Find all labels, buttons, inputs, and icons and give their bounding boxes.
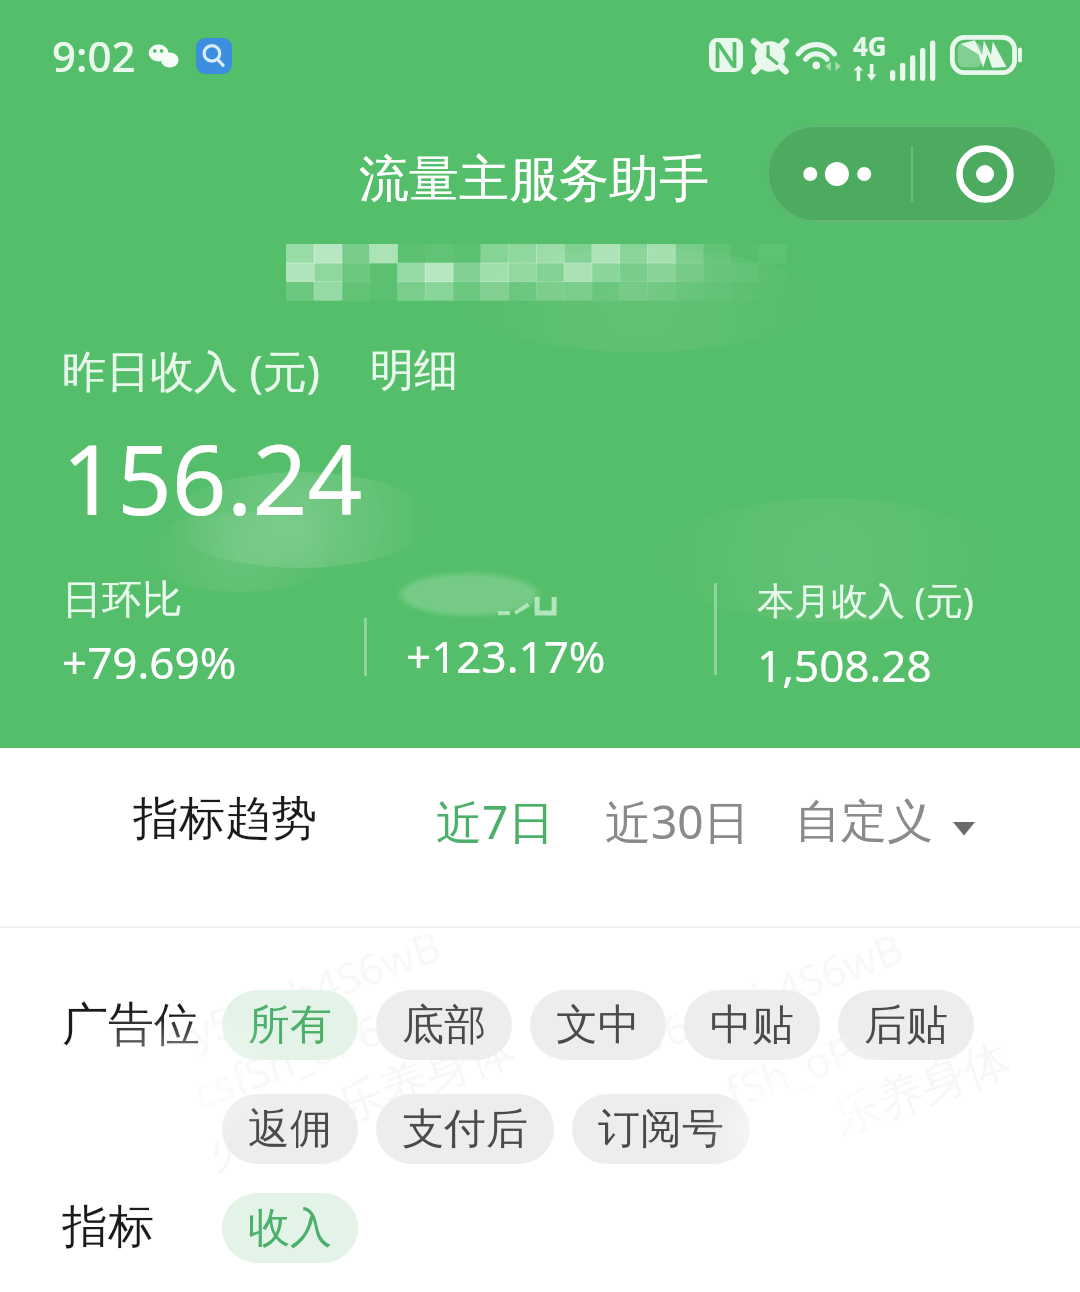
button[interactable]: 后贴 bbox=[838, 990, 974, 1060]
button[interactable]: 中贴 bbox=[684, 990, 820, 1060]
staticText: 自定义 bbox=[795, 793, 933, 851]
staticText: 底部 bbox=[402, 999, 486, 1052]
staticText: y5iVgb4S6wB bbox=[180, 916, 449, 1061]
staticText: +123.17% bbox=[406, 626, 606, 686]
staticText: 火盛快乐养身体 bbox=[200, 1019, 522, 1183]
staticText: 日环比 bbox=[62, 574, 182, 624]
staticText: 中贴 bbox=[710, 999, 794, 1052]
staticText: 支付后 bbox=[402, 1103, 528, 1156]
staticText: 流量主服务助手 bbox=[359, 148, 709, 211]
staticText: 广告位 bbox=[62, 996, 200, 1054]
staticText: 后贴 bbox=[864, 999, 948, 1052]
button[interactable]: 支付后 bbox=[376, 1094, 554, 1164]
staticText: 昨日收入 (元) bbox=[62, 340, 320, 400]
button[interactable]: 文中 bbox=[530, 990, 666, 1060]
staticText: 收入 bbox=[248, 1202, 332, 1255]
button[interactable]: 指标趋势 bbox=[133, 790, 317, 848]
staticText: 订阅号 bbox=[598, 1103, 724, 1156]
button[interactable]: 自定义 bbox=[795, 793, 975, 851]
button[interactable]: Close bbox=[913, 125, 1057, 222]
staticText: 乐养身体 bbox=[826, 1030, 1018, 1148]
staticText: 4G bbox=[853, 28, 887, 63]
staticText: 指标趋势 bbox=[133, 790, 317, 848]
button[interactable]: 明细 bbox=[370, 343, 458, 398]
staticText: 1,508.28 bbox=[757, 635, 932, 695]
button[interactable]: 近7日 bbox=[436, 790, 555, 853]
staticText: 所有 bbox=[248, 999, 332, 1052]
staticText: 指标 bbox=[62, 1198, 154, 1256]
button[interactable]: 近30日 bbox=[605, 790, 750, 853]
button[interactable]: 订阅号 bbox=[572, 1094, 750, 1164]
staticText: ov6zVgb4S6wB bbox=[611, 919, 911, 1074]
staticText: 明细 bbox=[370, 343, 458, 398]
staticText: 返佣 bbox=[248, 1103, 332, 1156]
button[interactable]: 底部 bbox=[376, 990, 512, 1060]
button[interactable]: 返佣 bbox=[222, 1094, 358, 1164]
button[interactable]: Search bbox=[196, 38, 232, 74]
staticText: 156.24 bbox=[62, 412, 363, 543]
button[interactable]: 收入 bbox=[222, 1193, 358, 1263]
button[interactable]: More bbox=[767, 125, 911, 222]
staticText: 近7日 bbox=[436, 790, 555, 853]
staticText: 近30日 bbox=[605, 790, 750, 853]
button[interactable]: 所有 bbox=[222, 990, 358, 1060]
staticText: csfSh_oP6E bbox=[185, 992, 412, 1121]
staticText: 文中 bbox=[556, 999, 640, 1052]
staticText: +79.69% bbox=[62, 632, 237, 692]
staticText: 9:02 bbox=[52, 27, 136, 84]
staticText: fSh_oP6E bbox=[718, 1005, 907, 1120]
staticText: 本月收入 (元) bbox=[757, 574, 974, 625]
